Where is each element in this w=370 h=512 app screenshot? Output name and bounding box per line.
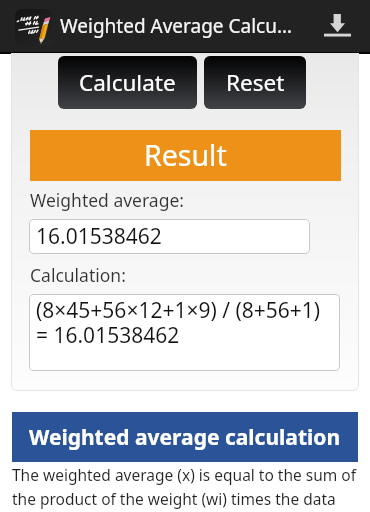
button[interactable]: Download (314, 2, 360, 48)
button[interactable]: Reset (204, 56, 306, 109)
staticText: The weighted average (x) is equal to the… (12, 464, 358, 509)
staticText: Calculation: (30, 263, 126, 287)
staticText: Reset (226, 67, 285, 98)
staticText: Weighted Average Calcu… (60, 13, 292, 39)
staticText: Weighted average: (30, 188, 184, 212)
staticText: 16.01538462 (36, 222, 162, 251)
button[interactable]: Calculate (58, 56, 197, 109)
staticText: (8×45+56×12+1×9) / (8+56+1) = 16.0153846… (36, 296, 321, 349)
staticText: Result (144, 136, 227, 175)
staticText: Calculate (79, 67, 176, 98)
staticText: Weighted average calculation (29, 423, 341, 452)
button[interactable]: Weighted average calculation (12, 412, 358, 462)
